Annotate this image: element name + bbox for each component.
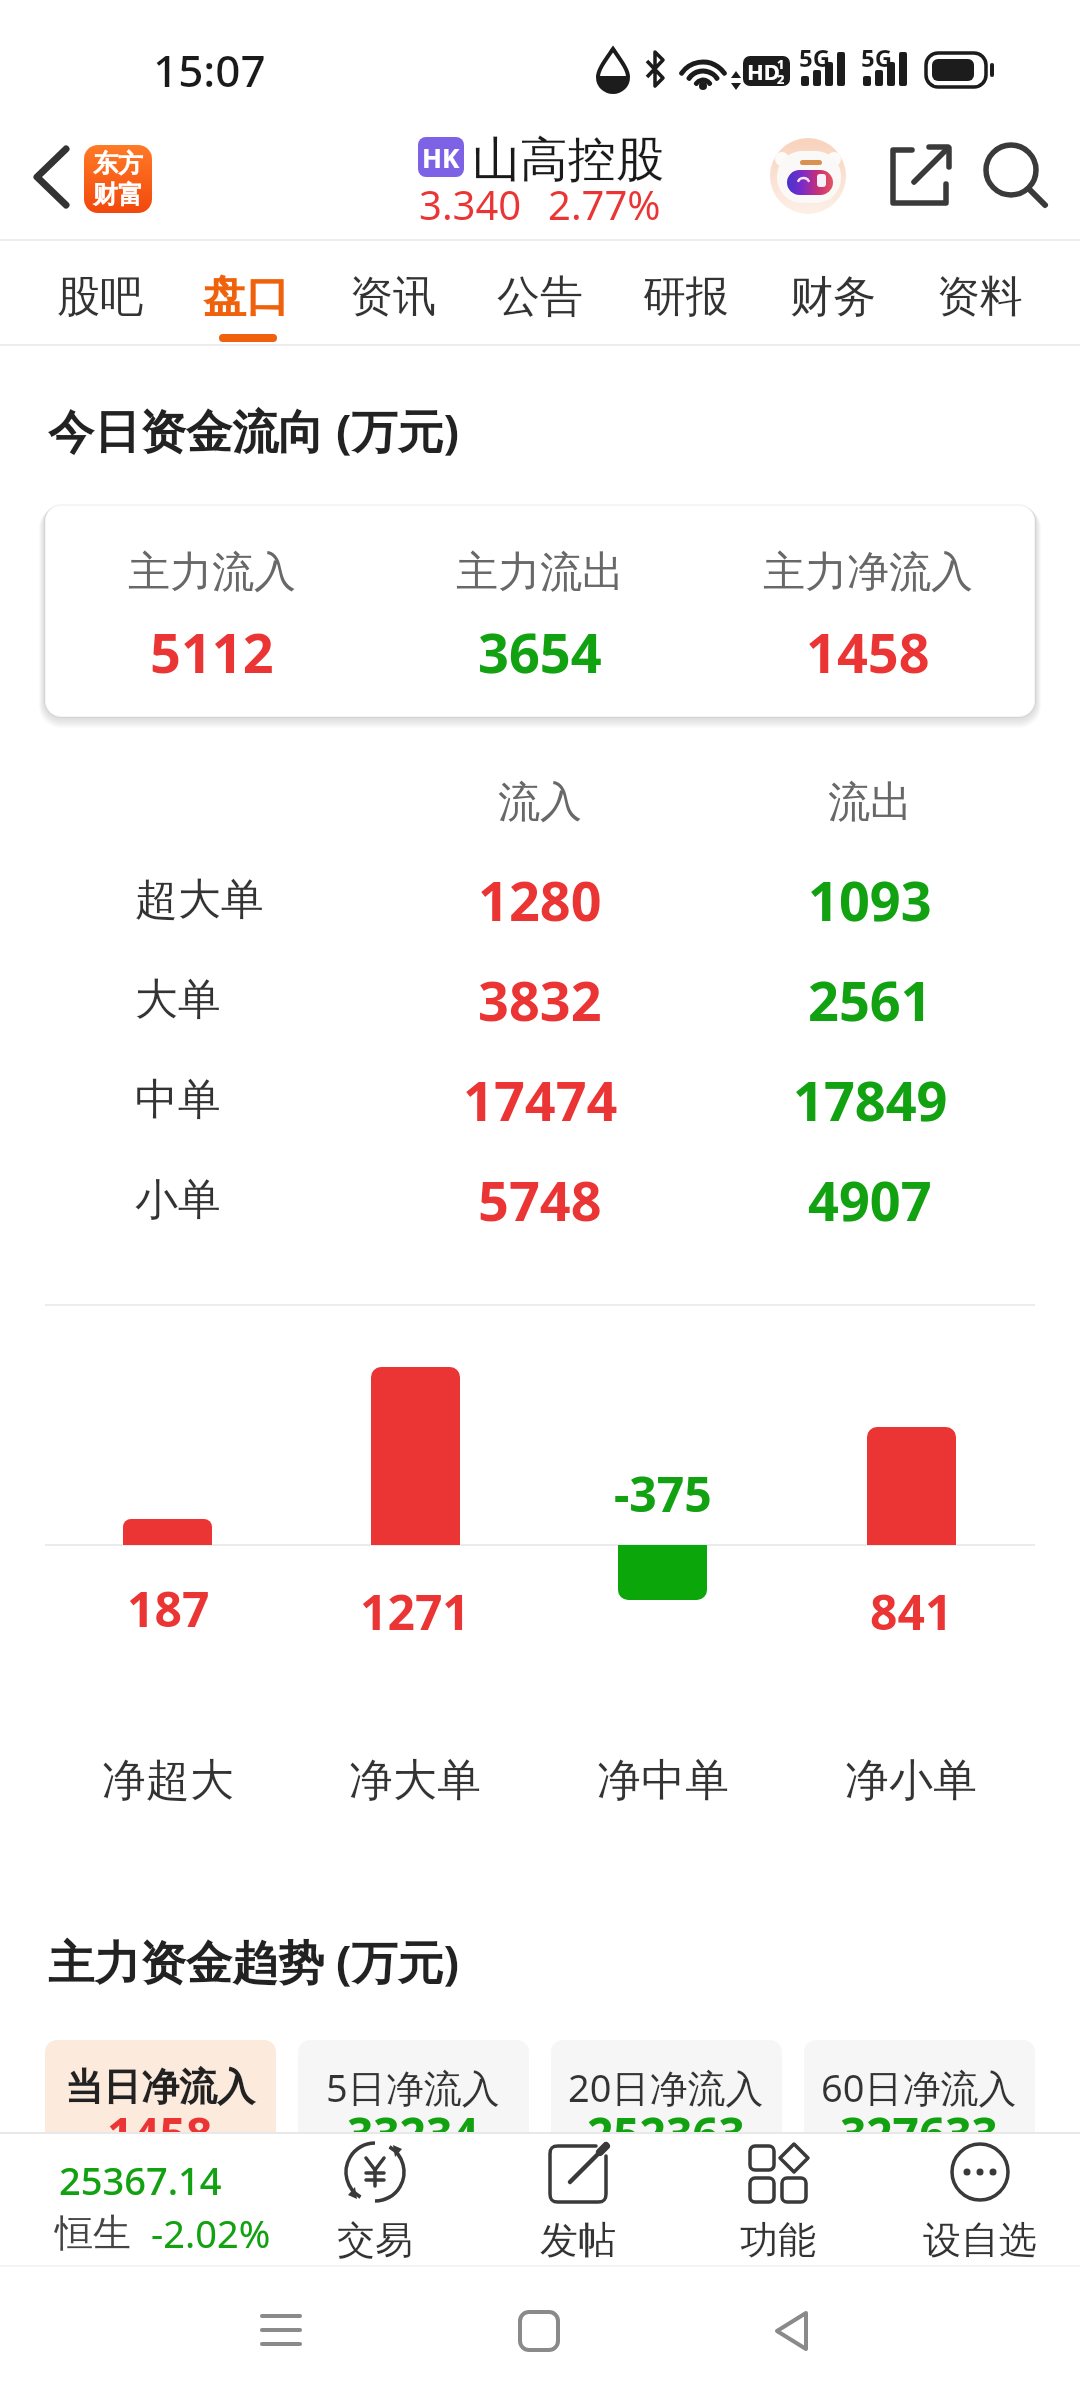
staticText: 净中单 [597, 1753, 729, 1808]
staticText: 5日净流入 [326, 2061, 500, 2113]
staticText: 2561 [808, 963, 932, 1037]
button[interactable]: 资料 [730, 252, 1080, 342]
staticText: 2 [777, 70, 785, 88]
staticText: 流出 [828, 776, 912, 829]
staticText: 1271 [360, 1579, 470, 1644]
staticText: 25367.14 [59, 2154, 222, 2206]
staticText: 1 [777, 55, 785, 73]
staticText: 东方 [93, 148, 143, 179]
staticText: 公告 [497, 270, 583, 324]
button[interactable]: 盘口 [0, 252, 496, 342]
button[interactable] [708, 2138, 848, 2263]
staticText: 33234 [347, 2102, 479, 2165]
staticText: 资料 [937, 270, 1023, 324]
staticText: 恒生 [55, 2209, 131, 2257]
staticText: 财富 [93, 179, 143, 210]
staticText: 252363 [587, 2102, 745, 2165]
button[interactable]: 东方 [84, 145, 152, 213]
staticText: 小单 [135, 1173, 221, 1227]
staticText: 净小单 [845, 1753, 977, 1808]
staticText: 3832 [478, 963, 602, 1037]
staticText: 1280 [478, 863, 602, 937]
staticText: 山高控股 [472, 130, 664, 190]
button[interactable] [804, 2040, 1035, 2158]
button[interactable] [20, 145, 80, 215]
staticText: 净超大 [102, 1753, 234, 1808]
staticText: 60日净流入 [821, 2061, 1017, 2113]
button[interactable]: 资讯 [143, 252, 643, 342]
staticText: 327633 [840, 2102, 998, 2165]
button[interactable] [30, 2150, 280, 2260]
staticText: 15:07 [153, 40, 266, 100]
staticText: 研报 [643, 270, 729, 324]
staticText: 超大单 [135, 873, 264, 927]
staticText: 2.77% [548, 177, 661, 231]
button[interactable] [551, 2040, 782, 2158]
button[interactable]: 研报 [436, 252, 936, 342]
staticText: HK [422, 140, 460, 175]
button[interactable]: 公告 [290, 252, 790, 342]
staticText: 841 [870, 1579, 953, 1644]
staticText: 设自选 [923, 2216, 1037, 2264]
staticText: 1458 [806, 615, 930, 689]
staticText: 17474 [463, 1063, 618, 1137]
button[interactable] [499, 2290, 579, 2370]
staticText: 17849 [793, 1063, 948, 1137]
staticText: 资讯 [350, 270, 436, 324]
button[interactable] [298, 2040, 529, 2158]
staticText: 1093 [808, 863, 932, 937]
button[interactable] [242, 2290, 322, 2370]
staticText: 净大单 [349, 1753, 481, 1808]
button[interactable] [305, 2138, 445, 2263]
staticText: 3654 [478, 615, 602, 689]
button[interactable] [508, 2138, 648, 2263]
staticText: 3.340 [419, 177, 522, 231]
staticText: 主力资金趋势 (万元) [48, 1930, 460, 1993]
staticText: 1458 [107, 2102, 213, 2165]
button[interactable] [751, 2290, 831, 2370]
staticText: 中单 [135, 1073, 221, 1127]
button[interactable] [880, 140, 954, 214]
button[interactable] [982, 140, 1056, 214]
staticText: 今日资金流向 (万元) [48, 399, 460, 462]
staticText: 20日净流入 [568, 2061, 764, 2113]
staticText: -2.02% [151, 2207, 271, 2259]
button[interactable]: 股吧 [0, 252, 350, 342]
staticText: 主力流入 [128, 546, 296, 599]
staticText: 5G [861, 41, 893, 74]
staticText: 5G [799, 41, 831, 74]
staticText: 盘口 [203, 270, 289, 324]
staticText: 187 [127, 1576, 210, 1641]
staticText: 交易 [337, 2216, 413, 2264]
button[interactable] [771, 137, 849, 215]
staticText: HD [747, 56, 780, 86]
staticText: -375 [614, 1461, 712, 1526]
staticText: 大单 [135, 973, 221, 1027]
staticText: 财务 [790, 270, 876, 324]
staticText: 5748 [478, 1163, 602, 1237]
button[interactable] [45, 2040, 276, 2158]
staticText: 4907 [808, 1163, 932, 1237]
staticText: 发帖 [540, 2216, 616, 2264]
staticText: 股吧 [57, 270, 143, 324]
staticText: 当日净流入 [65, 2063, 255, 2111]
staticText: 主力流出 [456, 546, 624, 599]
staticText: 主力净流入 [763, 546, 973, 599]
staticText: 功能 [740, 2216, 816, 2264]
button[interactable]: 财务 [583, 252, 1080, 342]
staticText: 5112 [150, 615, 274, 689]
button[interactable] [910, 2138, 1050, 2263]
staticText: 流入 [498, 776, 582, 829]
